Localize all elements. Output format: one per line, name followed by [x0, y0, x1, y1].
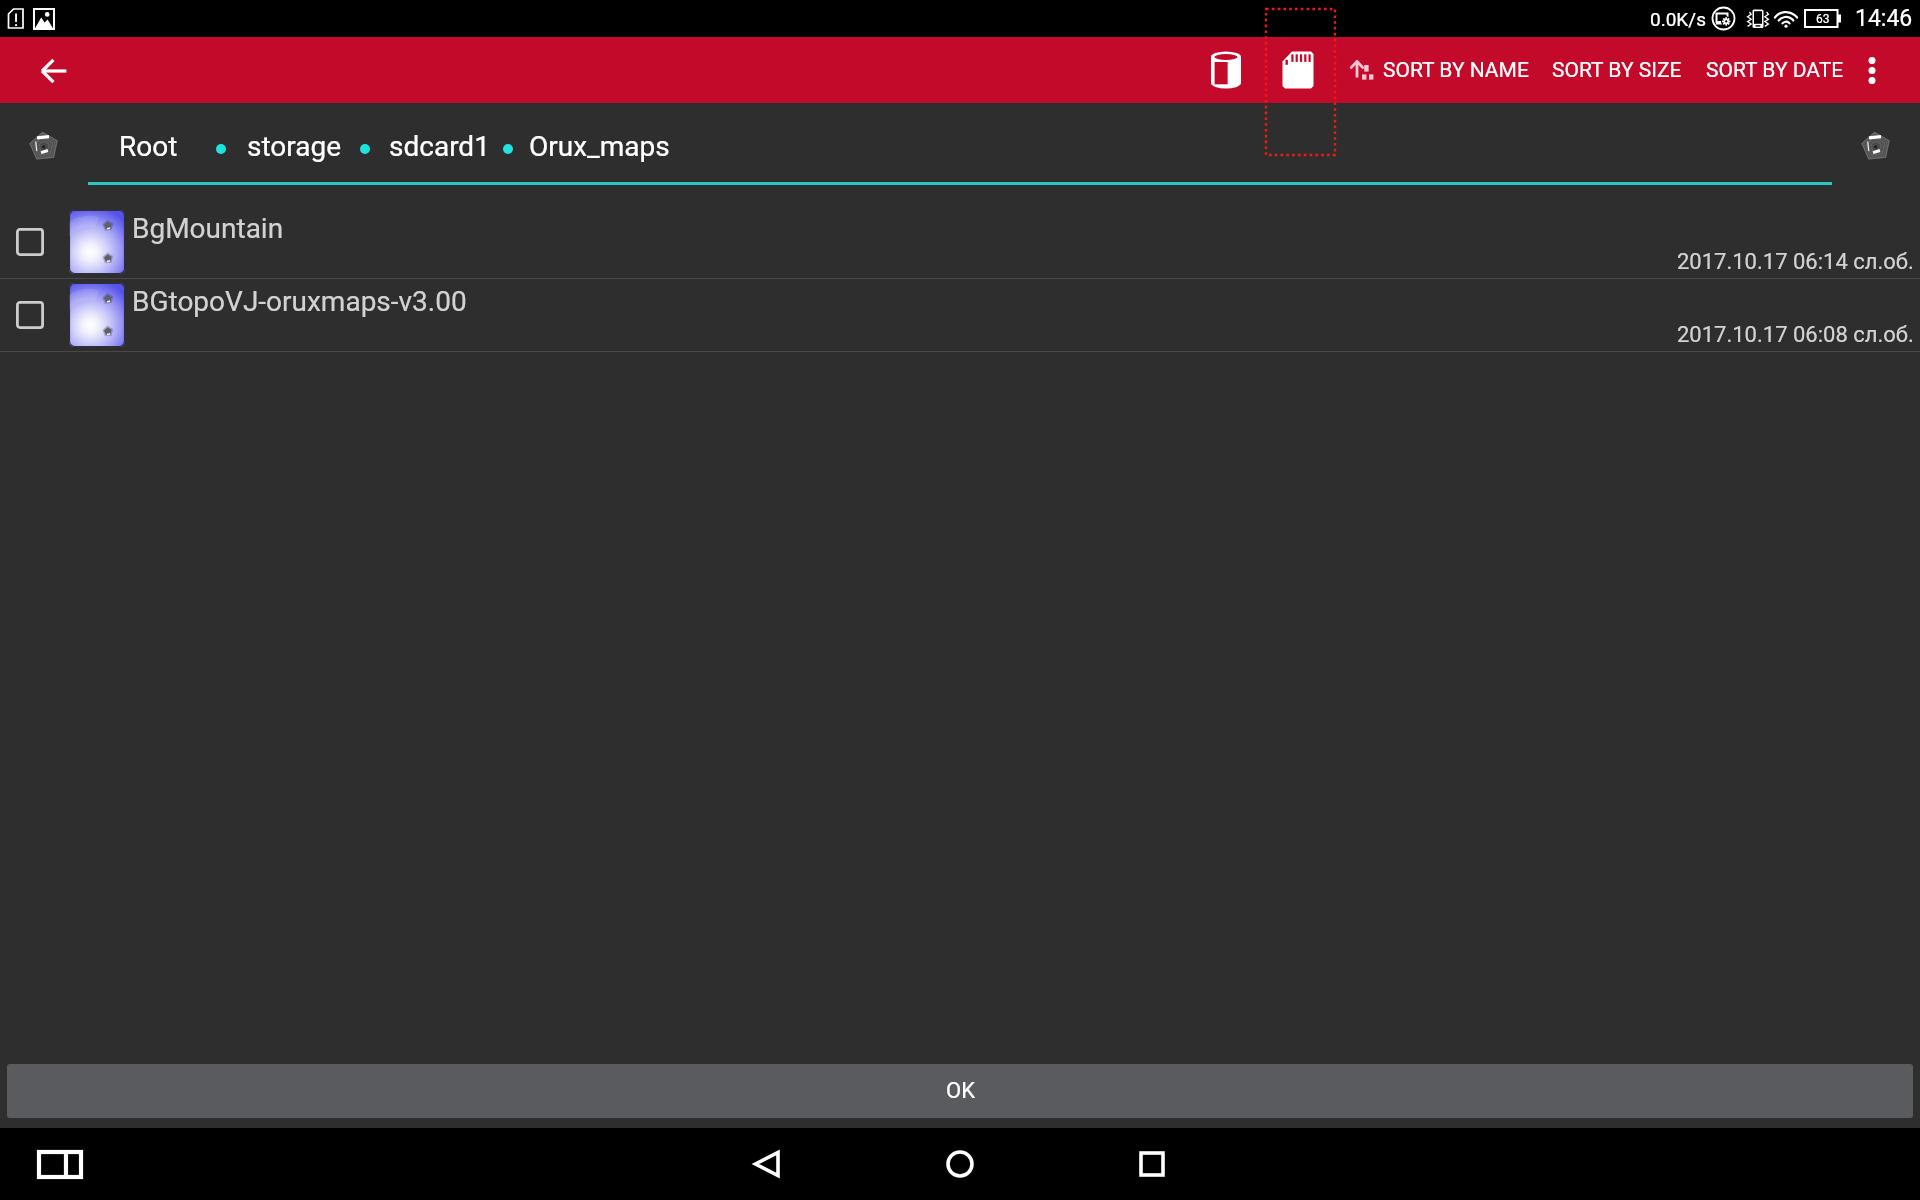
button[interactable]: SD card [1267, 39, 1329, 101]
button[interactable]: More options [1843, 41, 1901, 99]
button[interactable]: OK [7, 1064, 1913, 1118]
button[interactable]: Select BGtopoVJ-oruxmaps-v3.00 [0, 279, 1920, 352]
button[interactable]: Select BGtopoVJ-oruxmaps-v3.00 [16, 301, 44, 329]
button[interactable]: Back [32, 49, 76, 93]
button[interactable]: Split screen [35, 1139, 85, 1189]
staticText: OK [946, 1078, 975, 1104]
staticText: BgMountain [132, 212, 284, 245]
button[interactable]: storage [247, 120, 342, 172]
staticText: 14:46 [1855, 5, 1913, 32]
staticText: SORT BY NAME [1383, 58, 1529, 83]
button[interactable]: Recent apps [1107, 1144, 1197, 1184]
staticText: 63 [1816, 12, 1830, 26]
button[interactable]: OruxMaps [29, 131, 59, 161]
staticText: BGtopoVJ-oruxmaps-v3.00 [132, 285, 467, 318]
staticText: Orux_maps [529, 130, 670, 163]
staticText: SORT BY DATE [1706, 58, 1844, 83]
button[interactable]: Home [915, 1144, 1005, 1184]
button[interactable]: sdcard1 [389, 120, 490, 172]
staticText: sdcard1 [389, 130, 490, 163]
button[interactable]: Internal storage [1195, 39, 1257, 101]
button[interactable]: Back [722, 1144, 812, 1184]
button[interactable]: Orux_maps [529, 120, 670, 172]
button[interactable]: SORT BY SIZE [1544, 45, 1690, 95]
staticText: 0.0K/s [1650, 8, 1706, 30]
button[interactable]: Root [119, 120, 178, 172]
button[interactable]: Select BgMountain [0, 206, 1920, 279]
staticText: 2017.10.17 06:08 сл.об. [1677, 322, 1914, 348]
button[interactable]: SORT BY NAME [1345, 45, 1533, 95]
staticText: storage [247, 130, 342, 163]
staticText: Root [119, 130, 178, 163]
button[interactable]: SORT BY DATE [1698, 45, 1852, 95]
button[interactable]: OruxMaps [1861, 131, 1891, 161]
staticText: 2017.10.17 06:14 сл.об. [1677, 249, 1914, 275]
button[interactable]: Select BgMountain [16, 228, 44, 256]
staticText: SORT BY SIZE [1552, 58, 1682, 83]
